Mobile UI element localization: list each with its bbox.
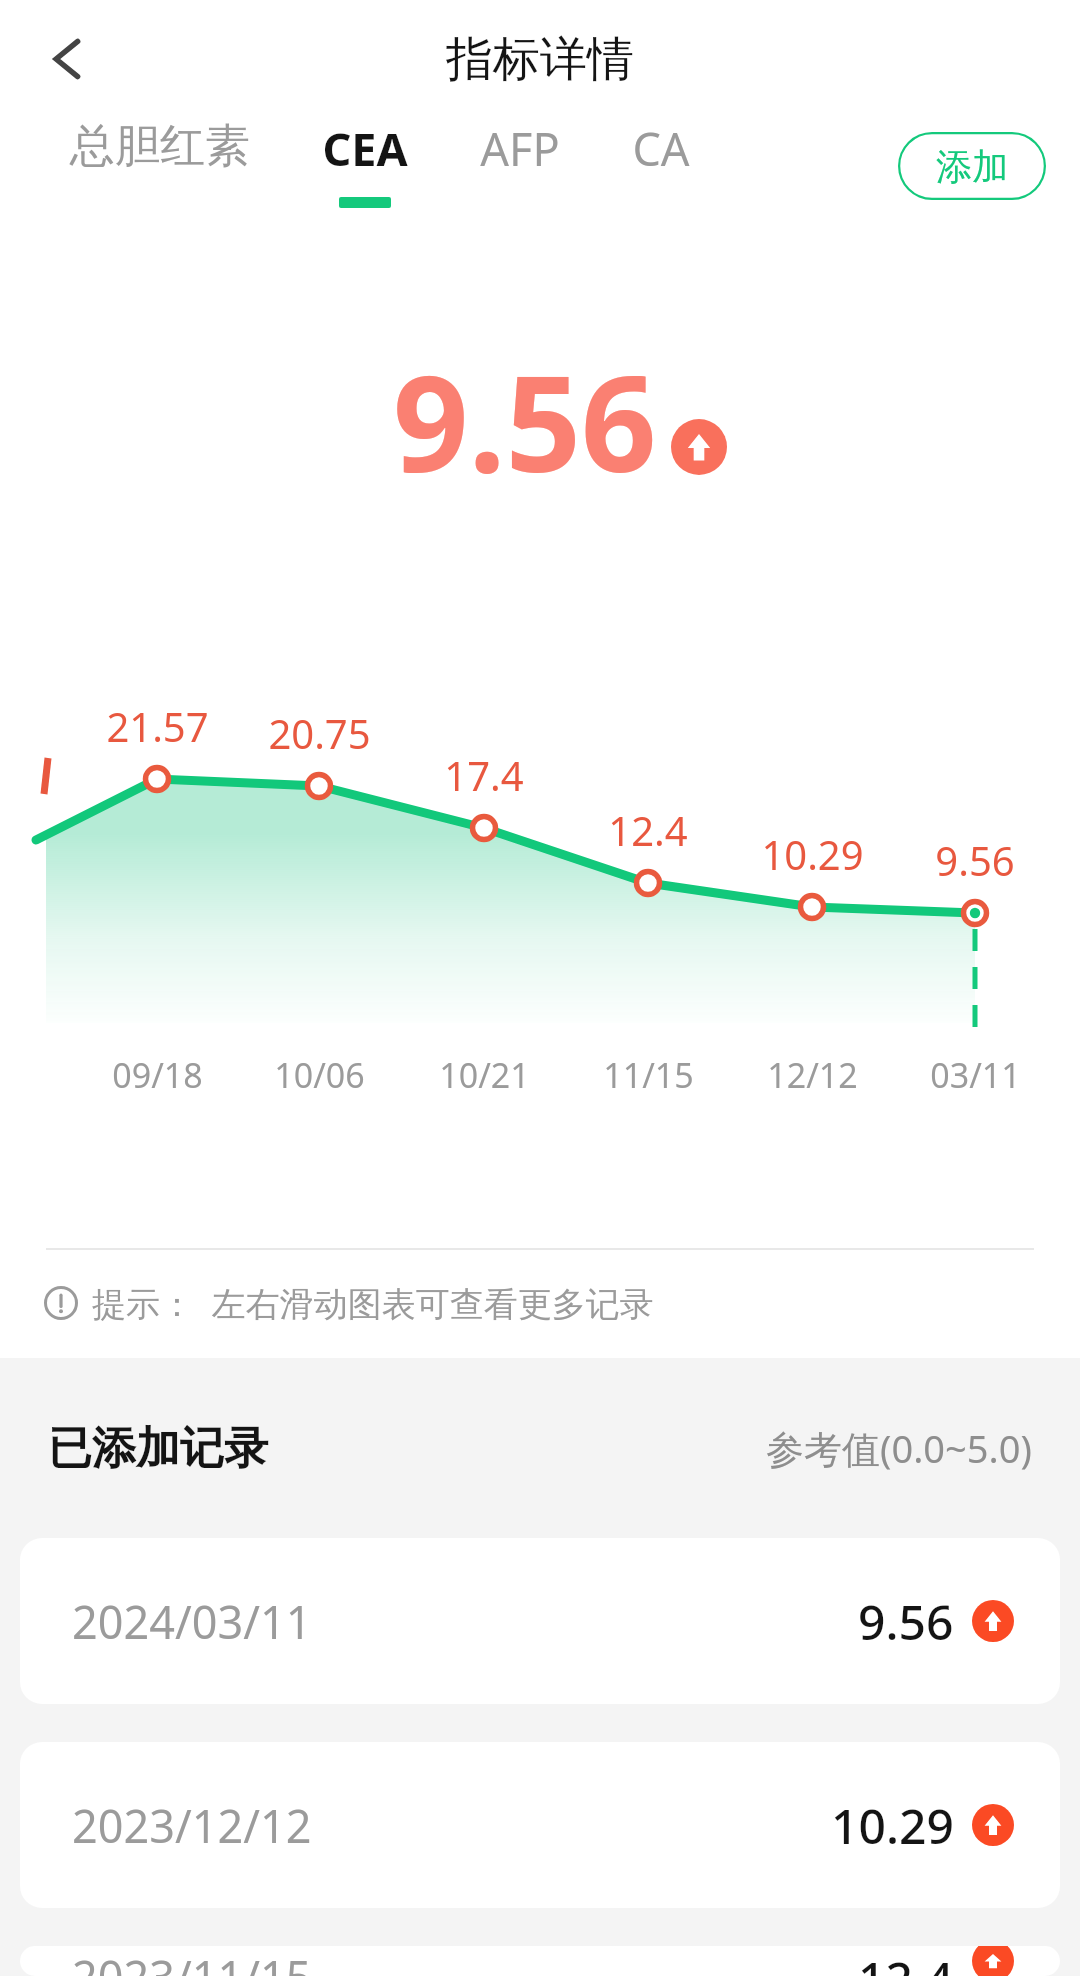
staticText: 已添加记录 bbox=[48, 1421, 268, 1476]
staticText: 10/06 bbox=[274, 1052, 365, 1098]
staticText: 提示： 左右滑动图表可查看更多记录 bbox=[92, 1280, 654, 1326]
button[interactable]: CA bbox=[632, 118, 690, 197]
staticText: 指标详情 bbox=[446, 30, 634, 89]
button[interactable]: 2024/03/11 bbox=[20, 1538, 1060, 1704]
staticText: 2023/11/15 bbox=[72, 1946, 312, 1976]
button[interactable]: 2023/12/12 bbox=[20, 1742, 1060, 1908]
staticText: 9.56 bbox=[393, 331, 657, 511]
staticText: 添加 bbox=[936, 144, 1008, 189]
staticText: 9.56 bbox=[858, 1589, 954, 1654]
staticText: AFP bbox=[480, 118, 560, 179]
staticText: 2023/12/12 bbox=[72, 1795, 312, 1856]
staticText: 12/12 bbox=[767, 1052, 858, 1098]
staticText: CA bbox=[632, 118, 690, 179]
staticText: 10.29 bbox=[761, 827, 864, 881]
staticText: 10/21 bbox=[439, 1052, 530, 1098]
staticText: 12.4 bbox=[608, 803, 688, 857]
staticText: 总胆红素 bbox=[70, 118, 250, 175]
button[interactable]: 总胆红素 bbox=[70, 118, 250, 193]
staticText: CEA bbox=[322, 118, 408, 179]
staticText: 参考值(0.0~5.0) bbox=[766, 1422, 1032, 1474]
staticText: 09/18 bbox=[112, 1052, 203, 1098]
button[interactable]: AFP bbox=[480, 118, 560, 197]
staticText: 11/15 bbox=[603, 1052, 694, 1098]
staticText: 10.29 bbox=[831, 1793, 954, 1858]
staticText: 20.75 bbox=[268, 706, 371, 760]
staticText: 2024/03/11 bbox=[72, 1591, 312, 1652]
button[interactable]: 返回 bbox=[22, 13, 114, 105]
staticText: 17.4 bbox=[444, 748, 524, 802]
button[interactable]: 添加 bbox=[898, 132, 1046, 200]
staticText: 12.4 bbox=[858, 1946, 954, 1976]
staticText: 03/11 bbox=[930, 1052, 1021, 1098]
staticText: 21.57 bbox=[106, 699, 209, 753]
button[interactable]: 2023/11/15 bbox=[20, 1946, 1060, 1976]
staticText: 9.56 bbox=[935, 833, 1015, 887]
button[interactable]: CEA bbox=[322, 118, 408, 208]
